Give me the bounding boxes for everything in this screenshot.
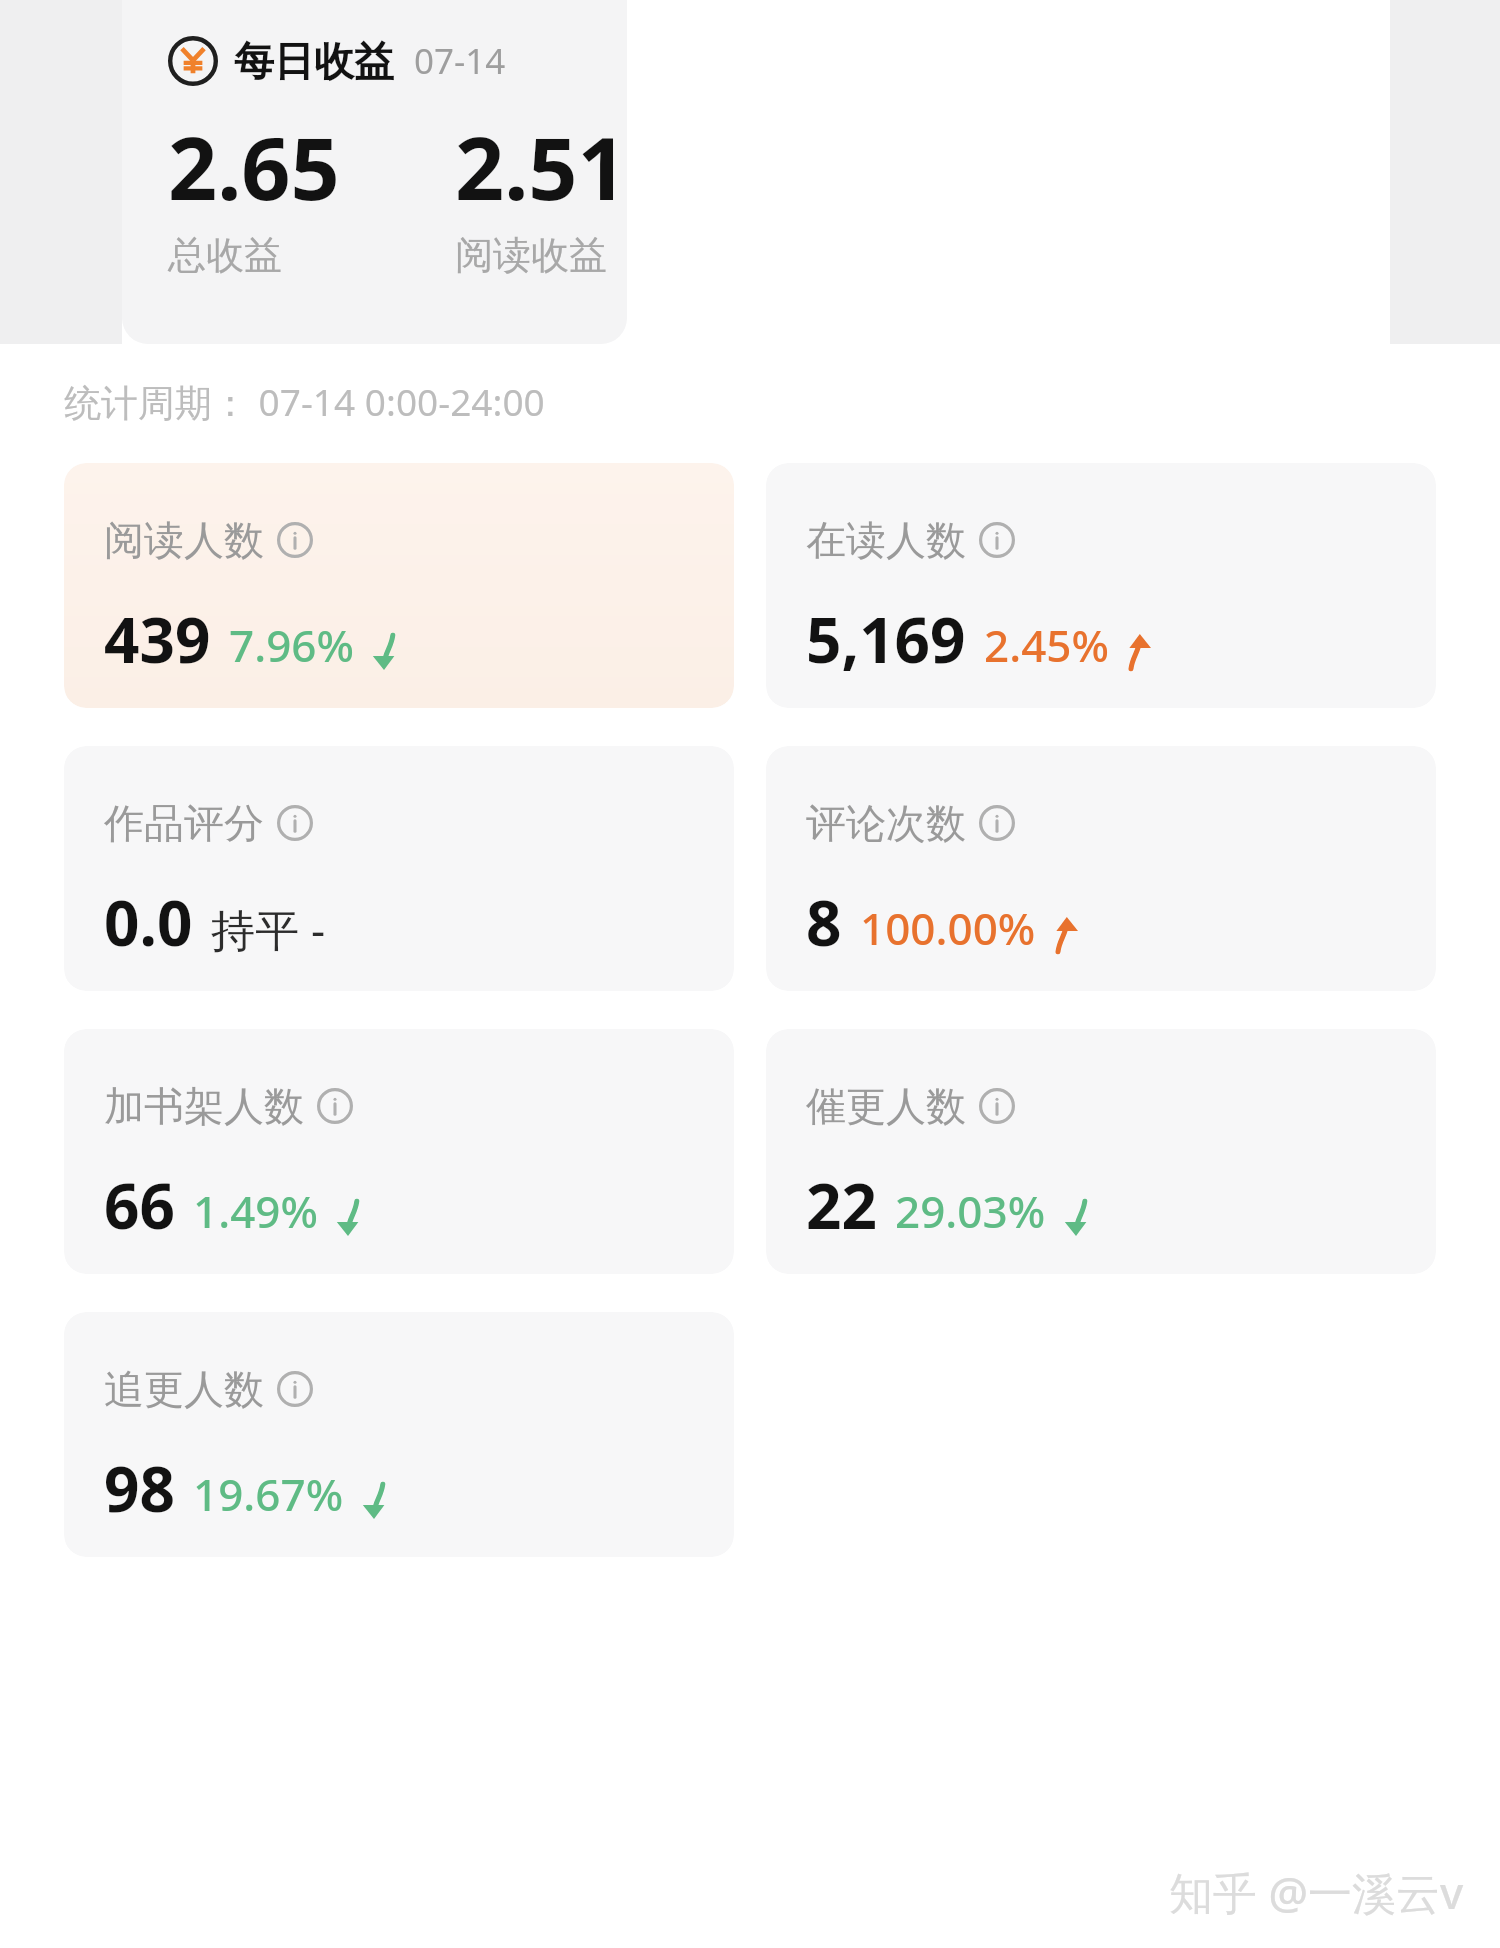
staticText: 29.03% (895, 1181, 1046, 1241)
staticText: 07-14 (414, 37, 506, 85)
staticText: 98 (104, 1446, 175, 1530)
button[interactable]: 阅读人数 (64, 463, 734, 708)
button[interactable]: 作品评分 (64, 746, 734, 991)
staticText: 阅读人数 (104, 515, 264, 565)
button[interactable]: 加书架人数 (64, 1029, 734, 1274)
staticText: 评论次数 (806, 798, 966, 848)
staticText: 439 (104, 597, 211, 681)
button[interactable]: 追更人数 (64, 1312, 734, 1557)
staticText: 加书架人数 (104, 1081, 304, 1131)
staticText: - (311, 899, 326, 959)
staticText: 追更人数 (104, 1364, 264, 1414)
staticText: 知乎 @一溪云v (1169, 1862, 1464, 1922)
staticText: 阅读收益 (455, 231, 607, 279)
staticText: 催更人数 (806, 1081, 966, 1131)
button[interactable]: 催更人数 (766, 1029, 1436, 1274)
staticText: 总收益 (168, 231, 282, 279)
staticText: 持平 (211, 904, 299, 959)
staticText: 100.00% (860, 898, 1036, 958)
button[interactable]: 评论次数 (766, 746, 1436, 991)
staticText: 2.45% (984, 615, 1109, 675)
staticText: 5,169 (806, 597, 966, 681)
staticText: 在读人数 (806, 515, 966, 565)
staticText: 8 (806, 880, 842, 964)
staticText: 19.67% (193, 1464, 344, 1524)
button[interactable]: 每日收益 (122, 0, 627, 344)
staticText: 7.96% (229, 615, 354, 675)
staticText: 统计周期： 07-14 0:00-24:00 (64, 376, 545, 427)
staticText: 每日收益 (234, 36, 394, 86)
button[interactable]: 在读人数 (766, 463, 1436, 708)
staticText: 2.51 (455, 108, 627, 225)
staticText: 66 (104, 1163, 175, 1247)
staticText: 22 (806, 1163, 877, 1247)
staticText: 0.0 (104, 880, 193, 964)
staticText: 作品评分 (104, 798, 264, 848)
staticText: 1.49% (193, 1181, 318, 1241)
staticText: 2.65 (168, 108, 340, 225)
